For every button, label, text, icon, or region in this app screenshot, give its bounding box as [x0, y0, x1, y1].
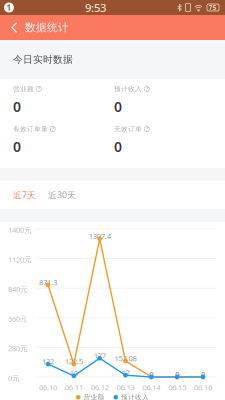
staticText: ?	[146, 85, 148, 92]
button[interactable]: Back	[4, 16, 25, 39]
staticText: 840元	[8, 284, 27, 294]
staticText: 营业额	[13, 85, 34, 93]
staticText: 0	[149, 369, 153, 379]
staticText: 06.14	[142, 382, 160, 392]
staticText: 06.16	[194, 382, 212, 392]
staticText: 0	[175, 369, 179, 379]
staticText: 0	[201, 369, 205, 379]
staticText: 有效订单量	[13, 125, 48, 133]
staticText: 1	[6, 2, 11, 13]
staticText: 近7天	[13, 189, 36, 201]
staticText: ?	[146, 125, 148, 132]
staticText: 560元	[8, 314, 27, 324]
staticText: 75	[209, 3, 217, 12]
staticText: 1120元	[8, 255, 31, 265]
staticText: 0	[114, 137, 122, 156]
button[interactable]: 近30天	[48, 189, 76, 201]
staticText: 无效订单	[114, 125, 142, 133]
staticText: 177	[94, 350, 106, 361]
staticText: 06.13	[116, 382, 134, 392]
staticText: 0	[114, 97, 122, 116]
staticText: 0元	[8, 373, 19, 383]
staticText: 预计收入	[121, 393, 149, 400]
staticText: 1400元	[8, 225, 31, 235]
staticText: 122	[42, 356, 54, 367]
staticText: 280元	[8, 343, 27, 353]
staticText: 今日实时数据	[13, 53, 73, 66]
staticText: ?	[52, 125, 54, 132]
staticText: 06.10	[39, 382, 57, 392]
staticText: 1307.4	[89, 231, 111, 241]
staticText: ?	[38, 85, 40, 92]
staticText: 0	[13, 97, 21, 116]
staticText: 152.08	[114, 353, 136, 363]
staticText: 预计收入	[114, 85, 142, 93]
staticText: 0	[149, 369, 153, 379]
staticText: 营业额	[83, 393, 104, 400]
staticText: 近30天	[48, 189, 76, 201]
button[interactable]: 近7天	[13, 189, 36, 201]
staticText: 122.5	[65, 356, 83, 367]
staticText: 06.12	[91, 382, 109, 392]
staticText: 871.3	[39, 277, 57, 287]
staticText: 06.11	[65, 382, 83, 392]
staticText: 17	[121, 367, 129, 378]
staticText: 0	[201, 369, 205, 379]
staticText: 06.15	[168, 382, 186, 392]
staticText: 9:53	[85, 0, 106, 15]
staticText: 数据统计	[25, 21, 69, 34]
staticText: 10	[70, 368, 78, 378]
staticText: 0	[13, 137, 21, 156]
staticText: 0	[175, 369, 179, 379]
